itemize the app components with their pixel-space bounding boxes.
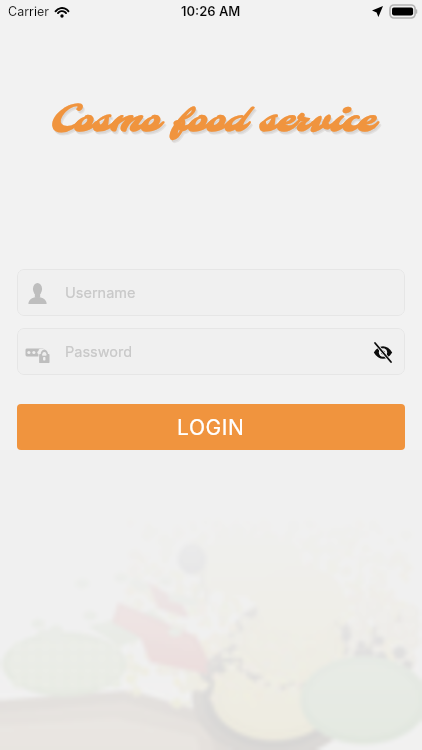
staticText: Password [65, 343, 133, 361]
staticText: Cosmo food service [49, 99, 374, 143]
button[interactable]: Username [17, 269, 405, 316]
button[interactable]: Password [17, 328, 405, 375]
button[interactable]: Show password [371, 340, 395, 364]
staticText: LOGIN [177, 415, 245, 440]
staticText: Carrier [8, 4, 49, 19]
staticText: Cosmo food service [50, 101, 375, 145]
staticText: Cosmo food service [51, 102, 376, 146]
staticText: 10:26 AM [181, 3, 241, 19]
button[interactable]: LOGIN [17, 404, 405, 450]
staticText: Username [65, 284, 136, 302]
